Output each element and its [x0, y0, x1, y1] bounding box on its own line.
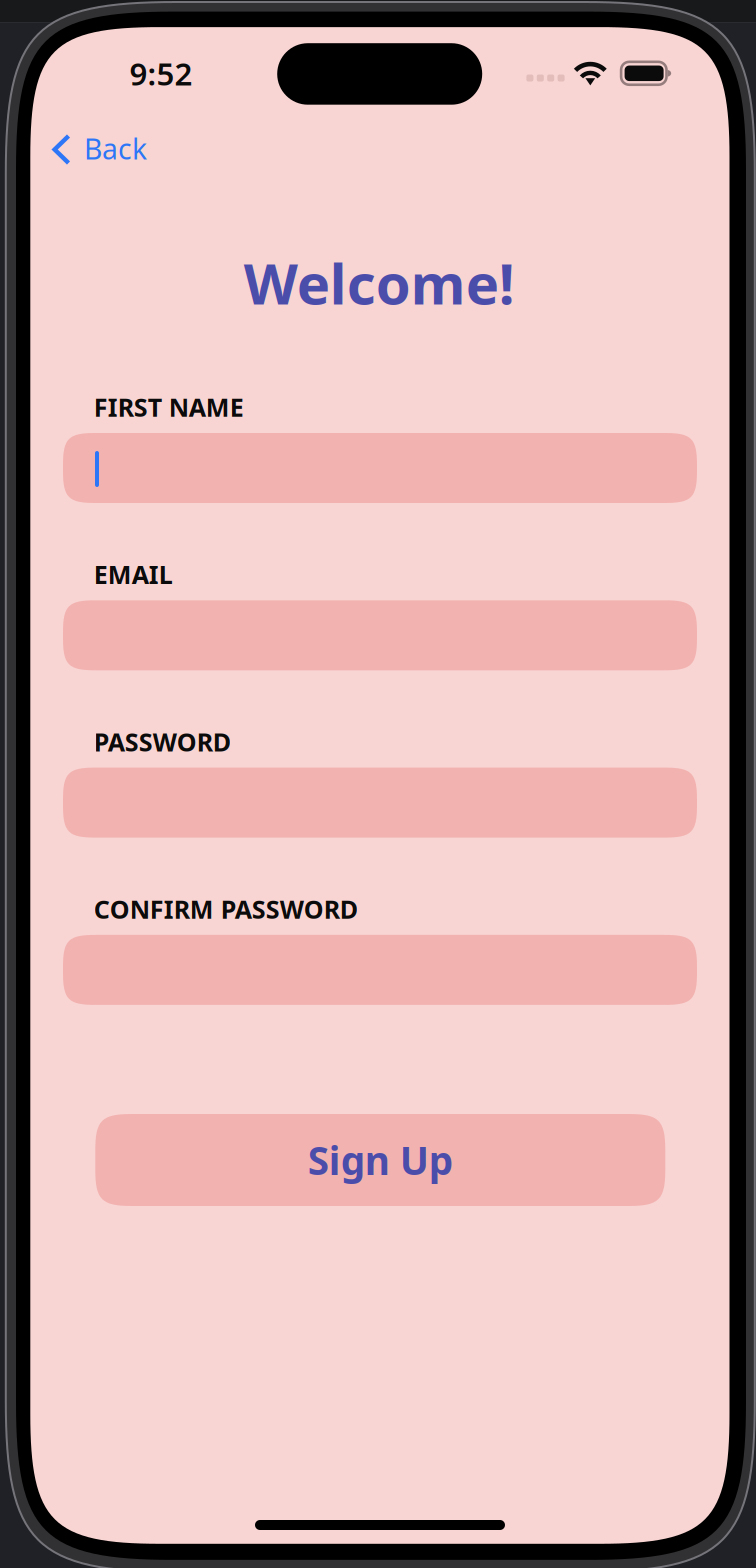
staticText: FIRST NAME [94, 390, 244, 424]
staticText: EMAIL [94, 557, 173, 591]
staticText: 9:52 [129, 52, 192, 95]
button[interactable]: Sign Up [95, 1114, 665, 1206]
button[interactable] [0, 0, 634, 70]
staticText: CONFIRM PASSWORD [94, 892, 358, 926]
button[interactable] [0, 0, 634, 70]
staticText: Sign Up [308, 1134, 453, 1186]
button[interactable] [0, 0, 634, 70]
button[interactable] [0, 0, 634, 70]
staticText: Welcome! [244, 245, 515, 321]
button[interactable]: Back [0, 118, 250, 180]
staticText: Back [84, 129, 147, 168]
staticText: PASSWORD [94, 725, 231, 759]
